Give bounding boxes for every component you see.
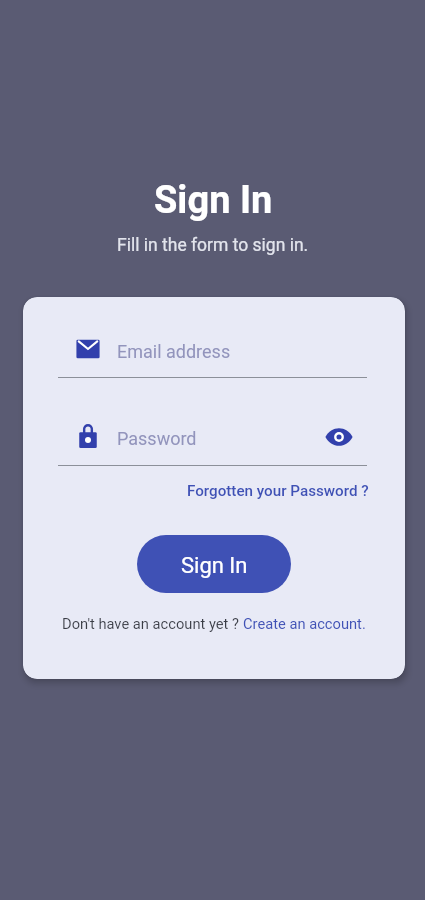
staticText: Sign In <box>181 553 248 579</box>
button[interactable]: Email <box>58 325 367 373</box>
button[interactable]: Forgotten your Password ? <box>187 478 369 504</box>
other: Password <box>76 424 100 448</box>
other: Email <box>76 337 100 361</box>
button[interactable]: Password <box>58 412 320 460</box>
staticText: Email address <box>117 341 231 362</box>
staticText: Don't have an account yet ? <box>62 615 243 632</box>
button[interactable]: Sign In <box>137 535 291 593</box>
staticText: Sign In <box>154 178 273 223</box>
button[interactable]: Create an account. <box>243 615 366 632</box>
staticText: Password <box>117 428 197 449</box>
staticText: Fill in the form to sign in. <box>117 235 309 256</box>
button[interactable]: Show password <box>320 418 356 454</box>
